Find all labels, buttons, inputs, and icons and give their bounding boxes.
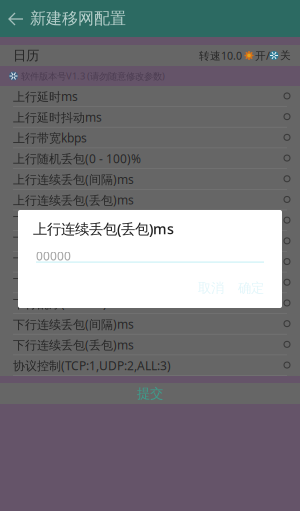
button[interactable]: 上行随机丢包(0 - 100)% bbox=[0, 148, 300, 169]
staticText: 确定 bbox=[238, 280, 264, 296]
staticText: 开/ bbox=[255, 48, 270, 63]
button[interactable]: 上行延时抖动ms bbox=[0, 107, 300, 127]
staticText: 上行延时ms bbox=[13, 88, 78, 104]
button[interactable]: 上行带宽kbps bbox=[0, 127, 300, 148]
button[interactable]: 下行乱序(0 - 100)% bbox=[0, 293, 300, 314]
staticText: 日历 bbox=[13, 47, 39, 64]
button[interactable]: 下行连续丢包(丢包)ms bbox=[0, 334, 300, 355]
staticText: 下行带宽kbps bbox=[13, 254, 87, 270]
staticText: 下行延时抖动ms bbox=[13, 233, 102, 249]
button[interactable]: 上行延时ms bbox=[0, 86, 300, 107]
staticText: 上行连续丢包(间隔)ms bbox=[13, 171, 134, 187]
button[interactable]: 取消 bbox=[194, 278, 228, 298]
staticText: 软件版本号V1.3 (请勿随意修改参数) bbox=[21, 70, 165, 82]
button[interactable]: 上行连续丢包(间隔)ms bbox=[0, 169, 300, 190]
button[interactable]: 下行带宽kbps bbox=[0, 252, 300, 272]
button[interactable]: 提交 bbox=[0, 383, 300, 404]
staticText: 上行连续丢包(丢包)ms bbox=[13, 192, 134, 208]
staticText: 提交 bbox=[137, 385, 163, 402]
staticText: 转速10.0 bbox=[199, 48, 242, 63]
staticText: 协议控制(TCP:1,UDP:2,ALL:3) bbox=[13, 358, 171, 373]
staticText: 取消 bbox=[198, 280, 224, 296]
button[interactable]: 上行连续丢包(丢包)ms bbox=[0, 190, 300, 210]
button[interactable]: 下行连续丢包(间隔)ms bbox=[0, 314, 300, 334]
staticText: 新建移网配置 bbox=[30, 9, 126, 28]
staticText: 上行随机丢包(0 - 100)% bbox=[13, 151, 141, 166]
button[interactable]: 下行随机丢包(0 - 100)% bbox=[0, 272, 300, 293]
button[interactable]: 确定 bbox=[234, 278, 268, 298]
staticText: 下行延时ms bbox=[13, 213, 78, 229]
staticText: 下行连续丢包(丢包)ms bbox=[13, 337, 134, 353]
staticText: 00000 bbox=[36, 248, 71, 264]
staticText: 上行带宽kbps bbox=[13, 130, 87, 146]
staticText: 上行连续丢包(丢包)ms bbox=[33, 219, 174, 238]
staticText: 关 bbox=[280, 49, 291, 62]
staticText: 下行随机丢包(0 - 100)% bbox=[13, 275, 141, 291]
button[interactable]: 下行延时抖动ms bbox=[0, 231, 300, 252]
staticText: 下行乱序(0 - 100)% bbox=[13, 295, 117, 311]
button[interactable]: 下行延时ms bbox=[0, 210, 300, 231]
staticText: 下行连续丢包(间隔)ms bbox=[13, 316, 134, 332]
button[interactable]: 返回 bbox=[0, 0, 30, 37]
button[interactable]: 协议控制(TCP:1,UDP:2,ALL:3) bbox=[0, 355, 300, 376]
staticText: 上行延时抖动ms bbox=[13, 109, 102, 125]
